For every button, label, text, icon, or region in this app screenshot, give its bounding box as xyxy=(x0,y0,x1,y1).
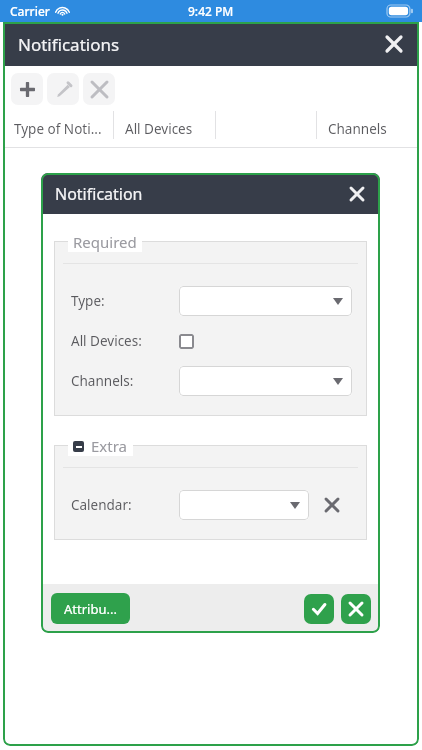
staticText: Extra xyxy=(91,436,128,456)
staticText: Notification xyxy=(55,183,143,205)
staticText: Channels xyxy=(328,120,387,138)
button[interactable]: Dropdown xyxy=(179,366,352,396)
staticText: Attribu... xyxy=(64,600,117,618)
button[interactable]: Add xyxy=(11,73,43,105)
button[interactable]: All Devices xyxy=(114,111,215,147)
staticText: Channels: xyxy=(71,372,134,390)
staticText: Notifications xyxy=(18,33,120,56)
button[interactable]: Close dialog xyxy=(342,179,372,209)
button[interactable]: Channels xyxy=(317,111,417,147)
button[interactable]: Confirm xyxy=(304,594,334,624)
button[interactable]: Close xyxy=(377,27,411,61)
staticText: Type of Noti... xyxy=(14,120,102,138)
staticText: All Devices: xyxy=(71,332,142,350)
button[interactable]: Clear calendar xyxy=(319,492,345,518)
button[interactable]: Type of Noti... xyxy=(3,111,113,147)
button[interactable]: Collapse Extra xyxy=(68,436,133,456)
staticText: Type: xyxy=(71,292,105,310)
button[interactable]: Cancel xyxy=(341,594,371,624)
button[interactable]: Delete xyxy=(83,73,115,105)
button[interactable]: All Devices checkbox xyxy=(179,334,194,349)
staticText: Required xyxy=(73,232,137,252)
button[interactable]: Dropdown xyxy=(179,286,352,316)
staticText: All Devices xyxy=(125,120,193,138)
staticText: Calendar: xyxy=(71,496,132,514)
staticText: Carrier xyxy=(10,3,50,19)
button[interactable]: Attribu... xyxy=(51,593,130,624)
button[interactable]: Edit xyxy=(47,73,79,105)
staticText: 9:42 PM xyxy=(188,3,234,19)
button[interactable]: Dropdown xyxy=(179,490,309,520)
